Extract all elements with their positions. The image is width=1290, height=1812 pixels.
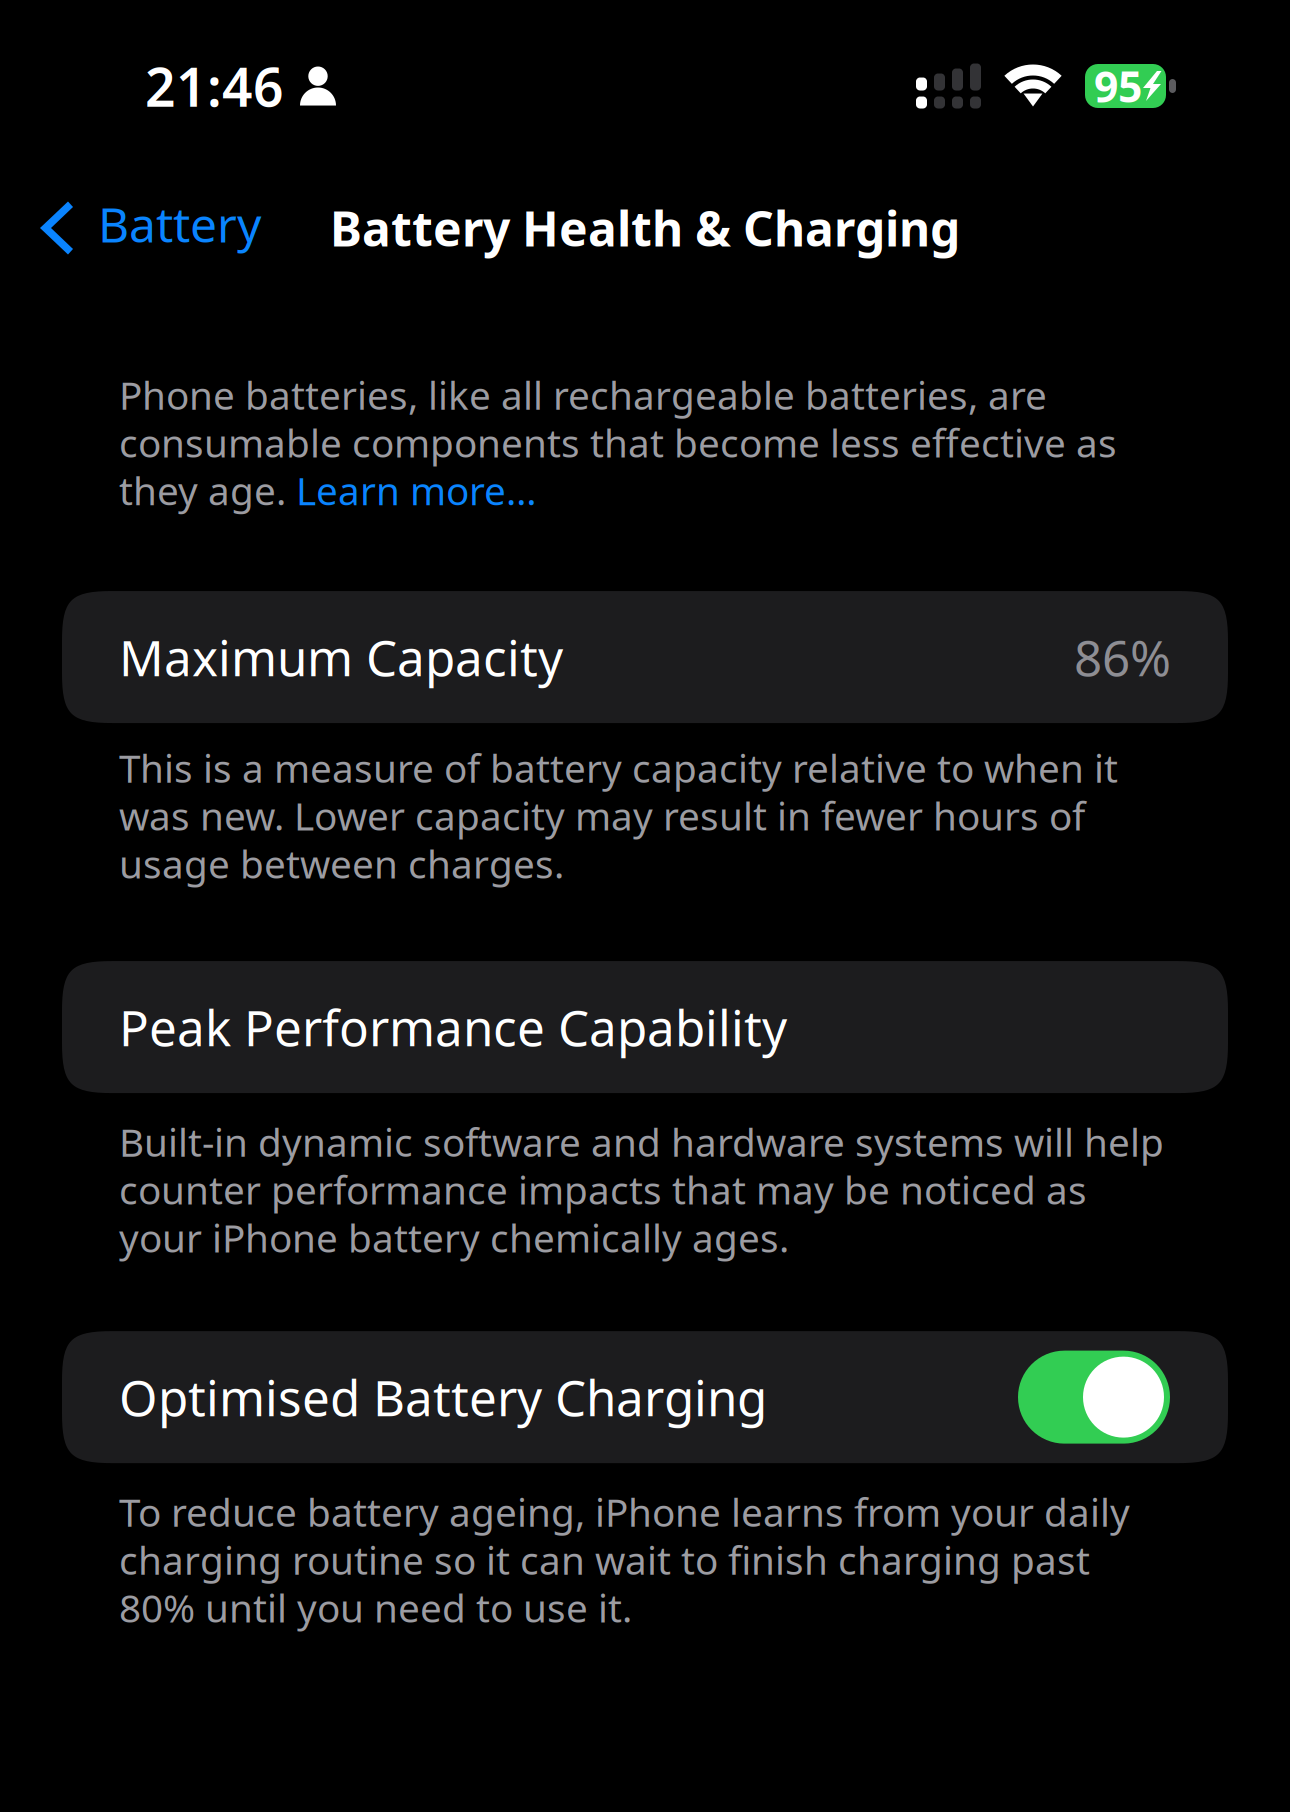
staticText: 21:46 — [145, 51, 284, 121]
staticText: Peak Performance Capability — [119, 994, 787, 1060]
staticText: Battery Health & Charging — [330, 196, 960, 260]
button[interactable]: Optimised Battery Charging — [1018, 1351, 1170, 1444]
staticText: 95 — [1094, 58, 1142, 114]
staticText: Optimised Battery Charging — [119, 1364, 767, 1430]
staticText: Battery — [98, 192, 261, 256]
staticText: Built-in dynamic software and hardware s… — [119, 1116, 1164, 1263]
staticText: This is a measure of battery capacity re… — [119, 742, 1118, 889]
staticText: To reduce battery ageing, iPhone learns … — [119, 1486, 1130, 1633]
staticText: 86% — [1074, 624, 1171, 690]
button[interactable]: Battery — [0, 182, 283, 274]
staticText: Maximum Capacity — [119, 624, 563, 690]
button[interactable]: Maximum Capacity — [0, 591, 1290, 723]
button[interactable]: Peak Performance Capability — [0, 961, 1290, 1093]
staticText: Phone batteries, like all rechargeable b… — [119, 369, 1117, 516]
